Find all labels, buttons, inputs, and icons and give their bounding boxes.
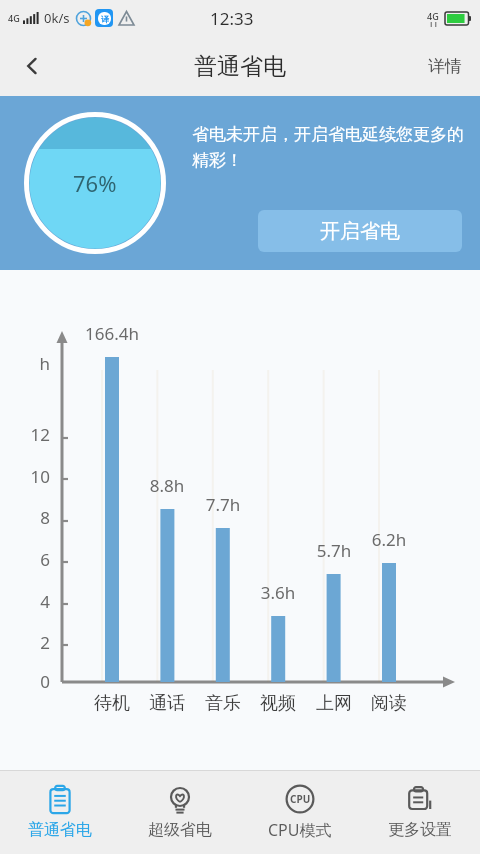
button[interactable]: Back <box>0 36 64 96</box>
button[interactable]: 更多设置 <box>360 771 480 854</box>
staticText: 3.6h <box>242 581 314 604</box>
staticText: 上网 <box>305 692 363 715</box>
staticText: 4G <box>8 12 20 24</box>
staticText: CPU <box>290 792 311 806</box>
staticText: 0 <box>16 670 50 693</box>
staticText: h <box>16 352 50 375</box>
button[interactable]: 开启省电 <box>258 210 462 252</box>
staticText: 超级省电 <box>148 820 212 840</box>
staticText: 译 <box>101 14 109 24</box>
button[interactable]: 超级省电 <box>120 771 240 854</box>
staticText: 4 <box>16 590 50 613</box>
staticText: CPU模式 <box>268 819 332 841</box>
staticText: 10 <box>16 465 50 488</box>
staticText: 更多设置 <box>388 820 452 840</box>
staticText: 8 <box>16 506 50 529</box>
staticText: 2 <box>16 631 50 654</box>
staticText: 阅读 <box>360 692 418 715</box>
staticText: 详情 <box>428 56 462 77</box>
staticText: 76% <box>73 168 117 198</box>
staticText: 通话 <box>138 692 196 715</box>
staticText: 12 <box>16 423 50 446</box>
staticText: 音乐 <box>194 692 252 715</box>
staticText: 8.8h <box>131 474 203 497</box>
staticText: 省电未开启，开启省电延续您更多的精彩！ <box>192 124 466 171</box>
button[interactable]: 普通省电 <box>0 771 120 854</box>
staticText: 12:33 <box>210 7 254 30</box>
staticText: 普通省电 <box>28 820 92 840</box>
button[interactable]: CPU <box>240 771 360 854</box>
staticText: 7.7h <box>187 493 259 516</box>
staticText: 166.4h <box>76 322 148 345</box>
staticText: 6 <box>16 548 50 571</box>
staticText: 普通省电 <box>194 52 286 81</box>
staticText: 待机 <box>83 692 141 715</box>
staticText: 6.2h <box>353 528 425 551</box>
button[interactable]: 详情 <box>410 36 480 96</box>
staticText: 0k/s <box>44 9 70 27</box>
staticText: 开启省电 <box>320 219 400 244</box>
staticText: 4G <box>427 10 439 22</box>
staticText: 视频 <box>249 692 307 715</box>
staticText: 5.7h <box>298 539 370 562</box>
